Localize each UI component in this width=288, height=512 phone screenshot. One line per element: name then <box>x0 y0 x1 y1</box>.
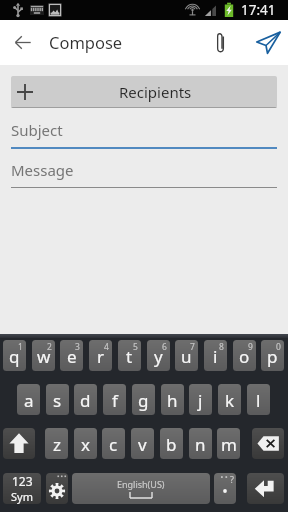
staticText: 4 <box>104 341 109 353</box>
button[interactable]: Back <box>0 20 45 65</box>
staticText: c <box>109 433 118 456</box>
staticText: Subject <box>11 120 63 140</box>
staticText: r <box>97 345 105 368</box>
button[interactable]: j <box>189 384 212 415</box>
staticText: g <box>138 389 149 412</box>
staticText: j <box>198 389 203 412</box>
staticText: p <box>267 345 278 368</box>
button[interactable]: h <box>161 384 184 415</box>
button[interactable]: Subject <box>11 120 277 149</box>
button[interactable]: a <box>17 384 40 415</box>
button[interactable]: n <box>189 428 212 459</box>
staticText: d <box>80 389 91 412</box>
button[interactable]: Enter <box>247 473 284 504</box>
staticText: Message <box>11 160 74 180</box>
staticText: 3 <box>75 341 80 353</box>
button[interactable]: z <box>45 428 68 459</box>
staticText: 0 <box>276 341 281 353</box>
staticText: n <box>195 433 206 456</box>
button[interactable]: b <box>160 428 183 459</box>
staticText: 5 <box>133 341 138 353</box>
staticText: h <box>167 389 178 412</box>
button[interactable]: u <box>175 340 198 371</box>
staticText: w <box>37 345 51 368</box>
button[interactable]: g <box>132 384 155 415</box>
button[interactable]: o <box>233 340 256 371</box>
button[interactable]: i <box>204 340 227 371</box>
staticText: b <box>166 433 177 456</box>
button[interactable]: p <box>261 340 284 371</box>
staticText: 9 <box>248 341 253 353</box>
button[interactable]: Shift <box>3 428 35 459</box>
staticText: 8 <box>219 341 224 353</box>
button[interactable]: e <box>60 340 83 371</box>
staticText: s <box>53 389 62 412</box>
button[interactable]: d <box>74 384 97 415</box>
button[interactable]: w <box>32 340 55 371</box>
staticText: y <box>154 345 163 368</box>
button[interactable]: Send <box>248 20 288 65</box>
staticText: x <box>81 433 90 456</box>
staticText: e <box>67 345 77 368</box>
staticText: Sym <box>11 489 33 504</box>
button[interactable]: t <box>118 340 141 371</box>
button[interactable]: l <box>247 384 270 415</box>
staticText: Compose <box>49 31 123 53</box>
staticText: m <box>221 433 237 456</box>
staticText: k <box>225 389 235 412</box>
staticText: u <box>181 345 192 368</box>
button[interactable]: Recipients <box>11 76 277 108</box>
button[interactable]: Backspace <box>252 428 284 459</box>
button[interactable]: y <box>147 340 170 371</box>
staticText: t <box>126 345 133 368</box>
staticText: i <box>213 345 218 368</box>
staticText: ? <box>230 473 234 485</box>
button[interactable]: Space <box>72 473 210 504</box>
button[interactable]: x <box>74 428 97 459</box>
staticText: 2 <box>47 341 52 353</box>
staticText: Recipients <box>119 82 192 102</box>
staticText: f <box>112 389 118 412</box>
button[interactable]: Attach file <box>203 20 239 65</box>
button[interactable]: s <box>46 384 69 415</box>
button[interactable]: Period <box>214 473 236 504</box>
staticText: English(US) <box>117 478 165 490</box>
button[interactable]: m <box>217 428 240 459</box>
button[interactable]: k <box>218 384 241 415</box>
staticText: 1 <box>18 341 23 353</box>
button[interactable]: Message <box>11 160 277 188</box>
staticText: 7 <box>190 341 195 353</box>
button[interactable]: q <box>3 340 26 371</box>
button[interactable]: c <box>102 428 125 459</box>
staticText: l <box>256 389 261 412</box>
staticText: q <box>9 345 20 368</box>
staticText: 17:41 <box>241 1 276 19</box>
button[interactable]: r <box>89 340 112 371</box>
button[interactable]: f <box>103 384 126 415</box>
staticText: 123 <box>12 473 33 489</box>
button[interactable]: Symbols <box>3 473 41 504</box>
staticText: a <box>24 389 34 412</box>
staticText: v <box>138 433 147 456</box>
staticText: o <box>239 345 250 368</box>
button[interactable]: Settings <box>46 473 68 504</box>
button[interactable]: v <box>131 428 154 459</box>
staticText: 6 <box>162 341 167 353</box>
staticText: z <box>53 433 61 456</box>
